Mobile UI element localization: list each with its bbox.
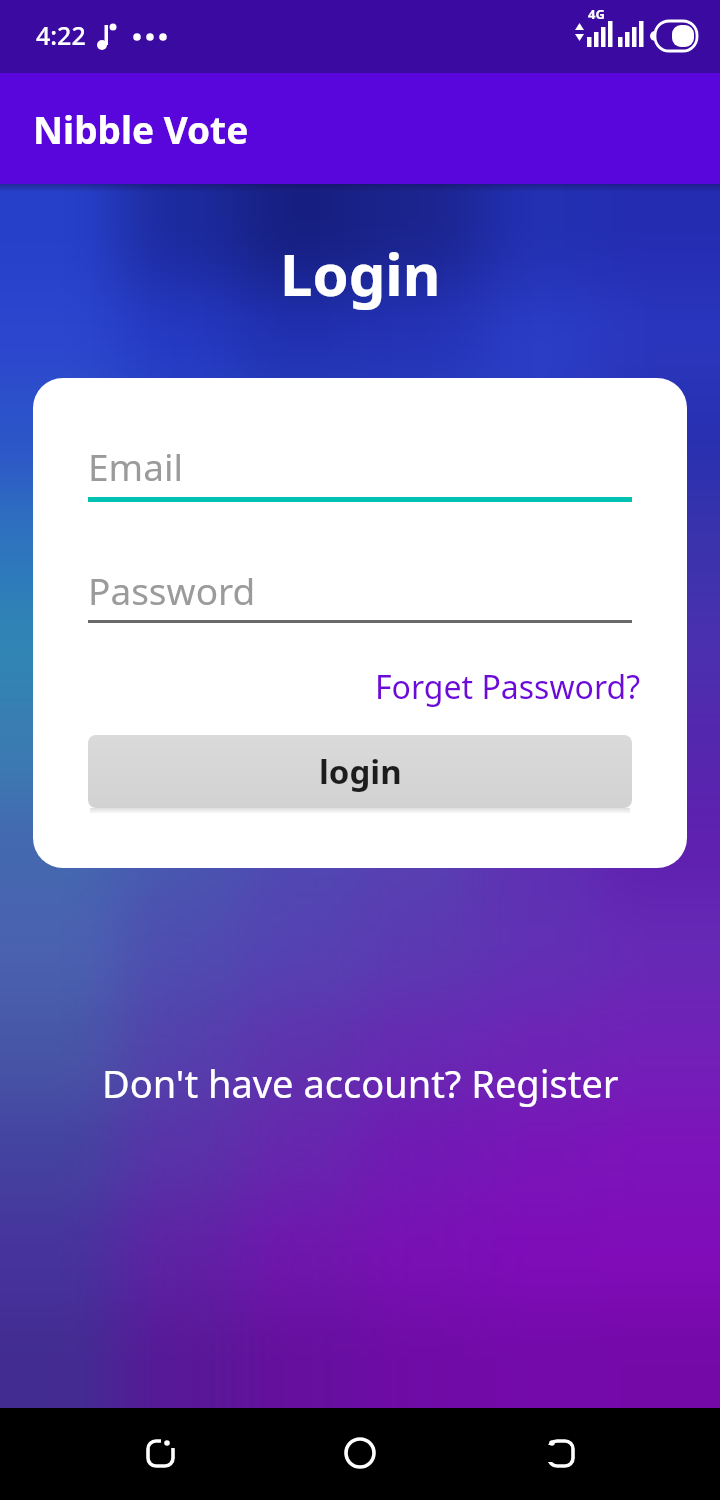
staticText: login (319, 749, 402, 794)
staticText: 4:22 (36, 18, 86, 52)
staticText: Forget Password? (375, 665, 641, 709)
staticText: 4G (588, 5, 605, 23)
staticText: Nibble Vote (33, 104, 249, 154)
staticText: Email (88, 441, 184, 491)
staticText: Don't have account? Register (102, 1057, 619, 1109)
staticText: Password (88, 565, 256, 615)
staticText: Login (280, 234, 441, 313)
